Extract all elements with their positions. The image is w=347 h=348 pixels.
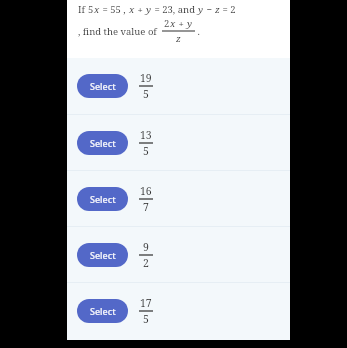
staticText: z <box>176 32 181 45</box>
staticText: If <box>78 3 88 16</box>
button[interactable]: Select <box>77 187 128 211</box>
staticText: + <box>135 3 146 16</box>
staticText: 7 <box>143 200 149 214</box>
staticText: = 2 <box>220 3 236 16</box>
staticText: , find the value of <box>78 25 160 38</box>
staticText: y <box>146 3 152 16</box>
staticText: y <box>187 17 193 30</box>
staticText: Select <box>90 137 116 149</box>
staticText: Select <box>90 249 116 261</box>
staticText: − <box>204 3 215 16</box>
staticText: 2 <box>143 256 149 270</box>
staticText: 13 <box>140 128 152 142</box>
staticText: = 23, and <box>152 3 198 16</box>
button[interactable]: Select <box>67 58 290 114</box>
staticText: Select <box>90 305 116 317</box>
button[interactable]: Select <box>77 74 128 98</box>
button[interactable]: Select <box>77 299 128 323</box>
staticText: = 55 , <box>100 3 129 16</box>
staticText: y <box>198 3 204 16</box>
staticText: 19 <box>140 71 152 85</box>
button[interactable]: Select <box>77 131 128 155</box>
staticText: 5 <box>88 3 94 16</box>
staticText: 17 <box>140 296 152 310</box>
staticText: 5 <box>143 87 149 101</box>
staticText: Select <box>90 193 116 205</box>
staticText: x <box>170 17 176 30</box>
staticText: 5 <box>143 312 149 326</box>
button[interactable]: Select <box>77 243 128 267</box>
staticText: Select <box>90 80 116 92</box>
staticText: 16 <box>140 184 152 198</box>
staticText: x <box>94 3 100 16</box>
button[interactable]: Select <box>67 171 290 226</box>
staticText: 2 <box>164 17 170 30</box>
button[interactable]: Select <box>67 283 290 338</box>
staticText: z <box>215 3 220 16</box>
staticText: + <box>176 17 187 30</box>
staticText: . <box>195 25 200 38</box>
staticText: 5 <box>143 144 149 158</box>
button[interactable]: Select <box>67 227 290 282</box>
button[interactable]: Select <box>67 115 290 170</box>
staticText: 9 <box>143 240 149 254</box>
staticText: x <box>129 3 135 16</box>
